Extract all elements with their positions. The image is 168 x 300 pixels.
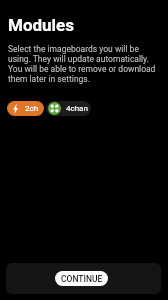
staticText: CONTINUE (61, 274, 103, 284)
staticText: Select the imageboards you will be using… (8, 44, 159, 84)
staticText: Modules (8, 15, 75, 35)
staticText: 4chan (66, 104, 88, 113)
button[interactable]: CONTINUE (55, 271, 108, 286)
button[interactable]: 4chan (46, 101, 91, 116)
staticText: 2ch (25, 104, 39, 113)
button[interactable]: 2ch (7, 101, 44, 116)
